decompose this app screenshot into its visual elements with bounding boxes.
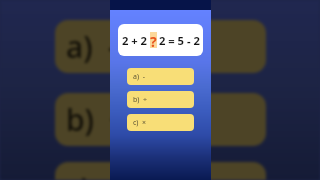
staticText: ?	[150, 32, 157, 48]
button[interactable]: c) ×	[127, 114, 194, 131]
staticText: c) ×	[66, 168, 123, 180]
staticText: 2 = 5 - 2	[159, 33, 200, 48]
staticText: 2 + 2	[122, 33, 148, 48]
staticText: b) ÷	[66, 99, 127, 140]
staticText: c) ×	[133, 118, 147, 128]
button[interactable]: a) -	[127, 68, 194, 85]
staticText: a) -	[133, 72, 145, 82]
button[interactable]: b) ÷	[127, 91, 194, 108]
staticText: a) -	[66, 26, 118, 67]
staticText: b) ÷	[133, 95, 148, 105]
